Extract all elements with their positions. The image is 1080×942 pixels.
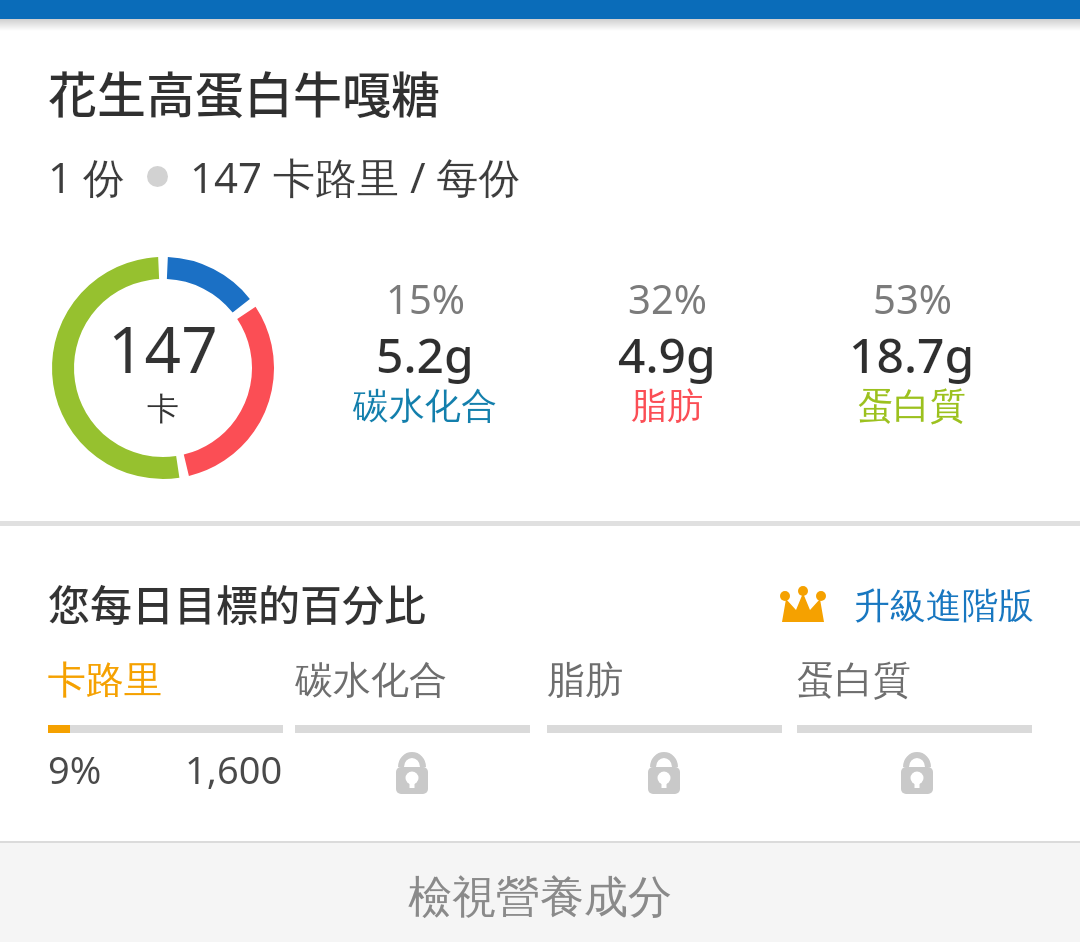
staticText: 53% [873,271,952,325]
staticText: 卡 [147,389,179,429]
staticText: 1,600 [185,743,283,795]
button[interactable]: 升級進階版 [779,583,1034,628]
staticText: 碳水化合 [295,656,447,704]
staticText: 1 份 [48,148,125,205]
staticText: 卡路里 [48,656,162,704]
staticText: 脂肪 [631,383,703,428]
staticText: 15% [386,271,465,325]
staticText: 蛋白質 [797,656,911,704]
staticText: 18.7g [849,322,975,387]
staticText: 您每日目標的百分比 [48,572,427,633]
staticText: 5.2g [376,322,474,387]
staticText: 147 卡路里 / 每份 [190,148,521,205]
button[interactable]: 檢視營養成分 [0,843,1080,942]
staticText: 4.9g [618,322,716,387]
staticText: 升級進階版 [854,583,1034,628]
staticText: 檢視營養成分 [408,870,672,925]
staticText: 花生高蛋白牛嘎糖 [48,56,441,127]
staticText: 脂肪 [547,656,623,704]
staticText: 32% [628,271,707,325]
staticText: 147 [108,305,218,392]
staticText: 9% [48,743,102,795]
staticText: 蛋白質 [858,383,966,428]
staticText: 碳水化合 [353,383,497,428]
